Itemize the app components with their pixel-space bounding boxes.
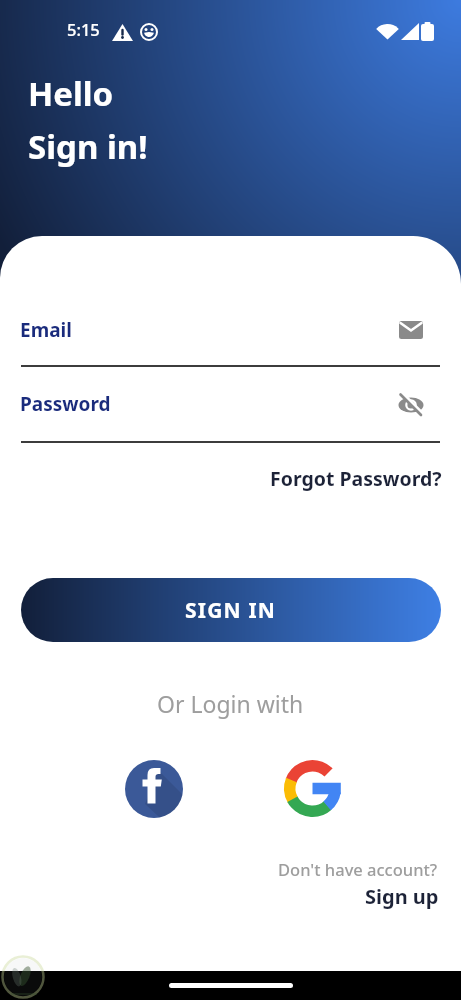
button[interactable] [125,760,183,818]
staticText: Or Login with [157,688,304,719]
button[interactable]: Forgot Password? [270,465,442,492]
button[interactable]: SIGN IN [21,578,441,642]
button[interactable] [284,760,341,817]
staticText: Forgot Password? [270,465,442,492]
button[interactable]: Password [0,383,461,441]
staticText: Sign in! [28,124,148,169]
staticText: Email [20,317,72,343]
staticText: Password [20,391,111,417]
button[interactable]: Sign up [365,883,439,910]
staticText: Don't have account? [278,858,438,880]
staticText: Sign up [365,883,439,910]
staticText: Hello [28,71,114,116]
staticText: SIGN IN [185,596,277,625]
staticText: 5:15 [67,18,100,40]
button[interactable]: Email [0,306,461,366]
